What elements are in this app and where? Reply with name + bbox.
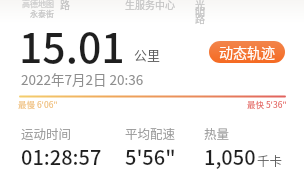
button[interactable]: 平均配速 bbox=[125, 124, 176, 171]
staticText: 生服务中心 bbox=[125, 0, 175, 11]
button[interactable]: 动态轨迹 bbox=[209, 41, 285, 63]
staticText: 千卡 bbox=[257, 151, 283, 169]
staticText: 5'56" bbox=[125, 142, 176, 171]
staticText: 1,050 bbox=[204, 142, 256, 171]
staticText: 高德地图 bbox=[22, 0, 54, 10]
staticText: 光 bbox=[195, 0, 205, 11]
staticText: 永泰街 bbox=[30, 8, 54, 20]
staticText: 最快 5'36" bbox=[247, 98, 287, 110]
button[interactable]: 运动时间 bbox=[21, 124, 102, 171]
staticText: 路 bbox=[195, 11, 205, 25]
staticText: 运动时间 bbox=[21, 124, 72, 142]
staticText: 明 bbox=[195, 4, 205, 18]
staticText: 路 bbox=[60, 0, 70, 11]
staticText: 动态轨迹 bbox=[219, 42, 275, 62]
staticText: 平均配速 bbox=[125, 124, 176, 142]
staticText: 最慢 6'06" bbox=[18, 98, 58, 110]
staticText: 2022年7月2日 20:36 bbox=[21, 69, 144, 89]
staticText: 15.01 bbox=[19, 15, 125, 74]
staticText: 热量 bbox=[204, 124, 230, 142]
staticText: 01:28:57 bbox=[21, 142, 102, 171]
button[interactable]: 热量 bbox=[204, 124, 283, 171]
staticText: 公里 bbox=[134, 45, 161, 64]
